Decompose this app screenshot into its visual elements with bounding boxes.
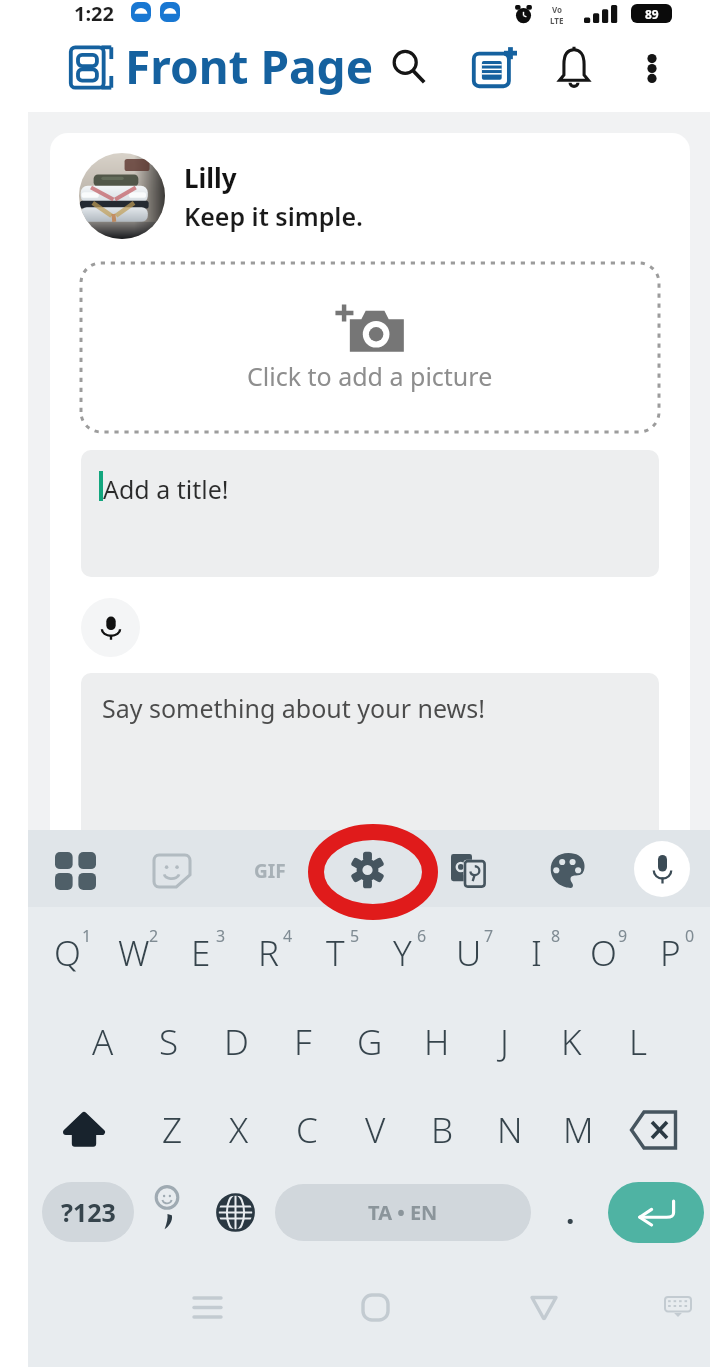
button[interactable]: Apps: [46, 842, 104, 900]
button[interactable]: Enter: [608, 1182, 704, 1243]
staticText: F: [294, 1018, 312, 1066]
button[interactable]: F: [274, 1013, 332, 1071]
button[interactable]: B: [413, 1101, 471, 1159]
staticText: .: [566, 1192, 575, 1233]
button[interactable]: L: [609, 1013, 667, 1071]
button[interactable]: N: [481, 1101, 539, 1159]
staticText: Y: [393, 929, 412, 977]
staticText: R: [258, 929, 279, 977]
staticText: 4: [283, 925, 293, 947]
staticText: A: [92, 1018, 114, 1066]
staticText: D: [224, 1018, 249, 1066]
staticText: 1: [82, 925, 92, 947]
button[interactable]: Q: [38, 924, 96, 982]
button[interactable]: Y: [373, 924, 431, 982]
button[interactable]: Back: [517, 1280, 571, 1334]
staticText: 6: [417, 925, 427, 947]
button[interactable]: Z: [143, 1101, 201, 1159]
staticText: P: [660, 929, 681, 977]
button[interactable]: Translate: [439, 842, 497, 900]
button[interactable]: Change language: [208, 1183, 262, 1241]
staticText: GIF: [254, 858, 286, 884]
staticText: U: [456, 929, 482, 977]
button[interactable]: V: [346, 1101, 404, 1159]
staticText: Keep it simple.: [184, 199, 363, 233]
button[interactable]: Shift: [55, 1101, 113, 1159]
staticText: S: [159, 1018, 179, 1066]
button[interactable]: D: [207, 1013, 265, 1071]
staticText: O: [590, 929, 617, 977]
staticText: 5: [350, 925, 360, 947]
button[interactable]: Settings: [338, 841, 396, 899]
staticText: Click to add a picture: [247, 359, 493, 393]
button[interactable]: New post: [468, 40, 520, 92]
button[interactable]: K: [542, 1013, 600, 1071]
button[interactable]: T: [306, 924, 364, 982]
staticText: 1:22: [74, 0, 114, 27]
button[interactable]: TA • EN: [275, 1184, 531, 1241]
button[interactable]: Home: [348, 1280, 402, 1334]
button[interactable]: A: [74, 1013, 132, 1071]
staticText: T: [326, 929, 345, 977]
button[interactable]: C: [278, 1101, 336, 1159]
staticText: E: [191, 929, 211, 977]
staticText: 8: [551, 925, 561, 947]
button[interactable]: Hide keyboard: [651, 1280, 705, 1334]
button[interactable]: Stickers: [143, 842, 201, 900]
button[interactable]: Click to add a picture: [81, 263, 659, 432]
button[interactable]: Say something about your news!: [81, 673, 659, 863]
staticText: Vo: [552, 4, 563, 15]
button[interactable]: S: [140, 1013, 198, 1071]
staticText: I: [531, 929, 542, 977]
staticText: Front Page: [125, 35, 374, 98]
staticText: W: [118, 929, 150, 977]
staticText: 7: [484, 925, 494, 947]
staticText: 89: [645, 6, 659, 22]
staticText: K: [561, 1018, 582, 1066]
button[interactable]: ?123: [42, 1182, 134, 1242]
button[interactable]: Backspace: [624, 1101, 684, 1159]
button[interactable]: J: [475, 1013, 533, 1071]
staticText: Q: [54, 929, 81, 977]
staticText: L: [629, 1018, 648, 1066]
button[interactable]: Add a title!: [81, 450, 659, 577]
button[interactable]: I: [507, 924, 565, 982]
button[interactable]: H: [408, 1013, 466, 1071]
staticText: Add a title!: [103, 472, 229, 506]
staticText: J: [500, 1018, 509, 1066]
button[interactable]: Voice input: [81, 598, 140, 657]
button[interactable]: Search: [384, 42, 434, 92]
staticText: ?123: [61, 1195, 116, 1229]
staticText: 0: [685, 925, 695, 947]
staticText: Say something about your news!: [102, 691, 485, 725]
button[interactable]: U: [440, 924, 498, 982]
button[interactable]: M: [549, 1101, 607, 1159]
staticText: C: [296, 1106, 318, 1154]
button[interactable]: R: [239, 924, 297, 982]
button[interactable]: P: [641, 924, 699, 982]
staticText: Z: [162, 1106, 183, 1154]
button[interactable]: W: [105, 924, 163, 982]
staticText: LTE: [550, 15, 564, 26]
button[interactable]: E: [172, 924, 230, 982]
staticText: Lilly: [184, 160, 237, 195]
button[interactable]: More options: [630, 46, 674, 90]
staticText: 2: [149, 925, 159, 947]
staticText: X: [229, 1106, 249, 1154]
staticText: TA • EN: [368, 1199, 438, 1226]
button[interactable]: X: [210, 1101, 268, 1159]
staticText: N: [497, 1106, 523, 1154]
button[interactable]: Period: [550, 1187, 590, 1237]
button[interactable]: Voice typing: [634, 841, 690, 897]
button[interactable]: Notifications: [549, 42, 599, 92]
staticText: H: [424, 1018, 450, 1066]
button[interactable]: O: [574, 924, 632, 982]
button[interactable]: Theme: [539, 842, 597, 900]
button[interactable]: GIF: [241, 842, 299, 900]
button[interactable]: G: [341, 1013, 399, 1071]
staticText: 3: [216, 925, 226, 947]
staticText: M: [563, 1106, 594, 1154]
button[interactable]: Recents: [180, 1280, 234, 1334]
staticText: G: [357, 1018, 383, 1066]
button[interactable]: Emoji and comma: [142, 1179, 192, 1237]
